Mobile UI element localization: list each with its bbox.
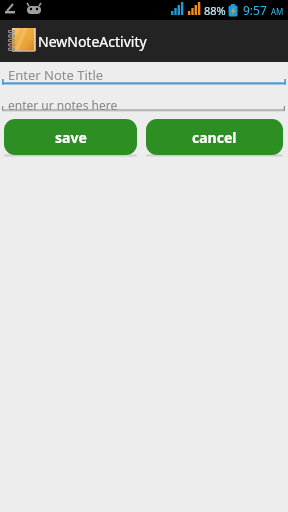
- staticText: enter ur notes here: [8, 97, 118, 113]
- staticText: cancel: [192, 128, 237, 147]
- staticText: NewNoteActivity: [38, 32, 147, 51]
- staticText: Enter Note Title: [8, 66, 104, 84]
- staticText: AM: [271, 6, 284, 17]
- staticText: save: [55, 128, 87, 147]
- staticText: 88%: [204, 3, 226, 18]
- staticText: 9:57: [243, 2, 267, 18]
